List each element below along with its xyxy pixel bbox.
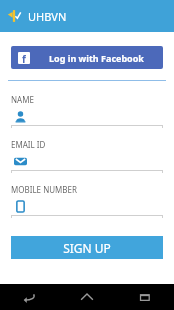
button[interactable]: Email bbox=[11, 153, 163, 170]
staticText: f bbox=[22, 52, 26, 64]
button[interactable]: Name bbox=[11, 108, 163, 125]
other: Name bbox=[14, 110, 27, 123]
staticText: Log in with Facebook bbox=[49, 52, 144, 64]
button[interactable]: Recents bbox=[116, 284, 174, 310]
staticText: EMAIL ID bbox=[11, 139, 46, 150]
staticText: NAME bbox=[11, 94, 34, 105]
staticText: MOBILE NUMBER bbox=[11, 184, 77, 195]
other: Email bbox=[14, 155, 27, 168]
button[interactable]: Back bbox=[0, 284, 58, 310]
staticText: UHBVN bbox=[28, 9, 67, 24]
button[interactable]: Home bbox=[58, 284, 116, 310]
other: Mobile number bbox=[14, 200, 27, 213]
button[interactable]: SIGN UP bbox=[11, 236, 163, 259]
button[interactable]: f bbox=[11, 46, 163, 69]
button[interactable]: Mobile number bbox=[11, 198, 163, 215]
staticText: SIGN UP bbox=[63, 240, 111, 256]
other: UHBVN logo bbox=[7, 9, 21, 23]
